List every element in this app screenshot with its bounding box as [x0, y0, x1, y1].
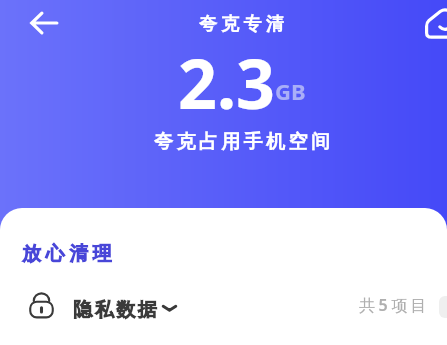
button[interactable]: Back	[23, 2, 65, 44]
staticText: 夸克专清	[199, 13, 289, 36]
button[interactable]: Select all	[439, 296, 447, 318]
staticText: 2.3	[178, 36, 275, 129]
staticText: 共5项目	[359, 294, 431, 316]
staticText: 放心清理	[22, 242, 117, 266]
button[interactable]: 隐私数据	[0, 287, 447, 333]
staticText: 隐私数据	[72, 298, 158, 322]
staticText: 夸克占用手机空间	[154, 130, 334, 154]
button[interactable]: Home	[425, 7, 447, 47]
staticText: GB	[275, 76, 306, 106]
